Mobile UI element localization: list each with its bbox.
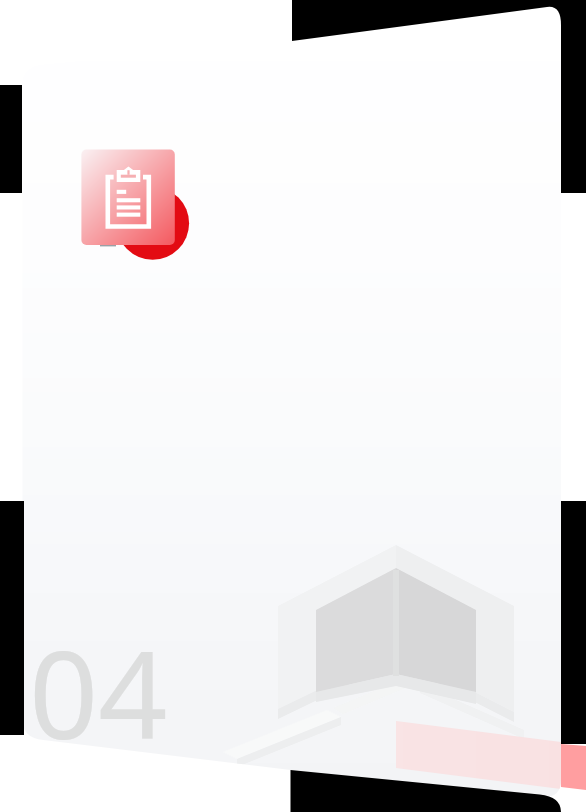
staticText: 04 <box>29 610 168 775</box>
button[interactable]: Task list <box>82 149 176 247</box>
